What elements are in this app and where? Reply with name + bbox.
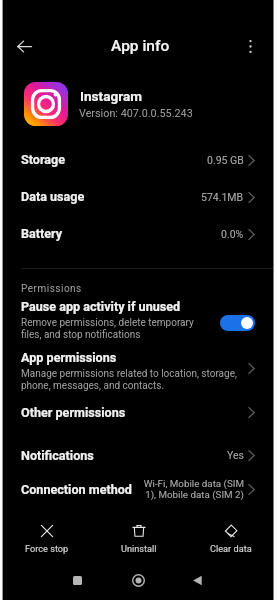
staticText: Storage	[21, 152, 66, 167]
staticText: Wi-Fi, Mobile data (SIM 1), Mobile data …	[140, 478, 244, 500]
button[interactable]: Other permissions	[0, 397, 277, 427]
staticText: Force stop	[25, 543, 69, 554]
button[interactable]: Recents	[62, 560, 92, 600]
staticText: Remove permissions, delete temporary fil…	[21, 317, 197, 341]
button[interactable]: Pause app activity if unused	[0, 296, 277, 340]
button[interactable]: Clear data	[185, 520, 277, 558]
staticText: Connection method	[21, 482, 132, 497]
button[interactable]: More options	[238, 34, 262, 58]
staticText: Battery	[21, 226, 63, 241]
staticText: Version: 407.0.0.55.243	[79, 107, 193, 120]
staticText: App info	[111, 37, 170, 55]
staticText: Manage permissions related to location, …	[21, 368, 237, 392]
staticText: 0.0%	[221, 228, 244, 240]
staticText: App permissions	[21, 350, 117, 365]
staticText: 0.95 GB	[207, 154, 244, 166]
button[interactable]: Battery	[0, 215, 277, 252]
button[interactable]: Uninstall	[93, 520, 185, 558]
staticText: Permissions	[21, 283, 82, 295]
button[interactable]: Force stop	[0, 520, 93, 558]
staticText: Notifications	[21, 448, 94, 463]
button[interactable]: Home	[123, 560, 153, 600]
button[interactable]: Storage	[0, 141, 277, 178]
button[interactable]: Back	[11, 33, 37, 59]
button[interactable]: Back	[182, 560, 212, 600]
staticText: Data usage	[21, 189, 85, 204]
button[interactable]: Data usage	[0, 178, 277, 215]
button[interactable]: App permissions	[0, 346, 277, 391]
button[interactable]: Connection method	[0, 473, 277, 505]
staticText: Yes	[227, 449, 244, 461]
staticText: Pause app activity if unused	[21, 299, 181, 314]
staticText: 574.1MB	[201, 191, 244, 203]
staticText: Uninstall	[121, 543, 157, 554]
staticText: Instagram	[80, 88, 143, 104]
staticText: Other permissions	[21, 405, 126, 420]
button[interactable]: Pause app activity if unused toggle	[220, 315, 255, 331]
staticText: Clear data	[210, 543, 252, 554]
button[interactable]: Notifications	[0, 440, 277, 470]
button[interactable]: Instagram	[0, 76, 277, 132]
